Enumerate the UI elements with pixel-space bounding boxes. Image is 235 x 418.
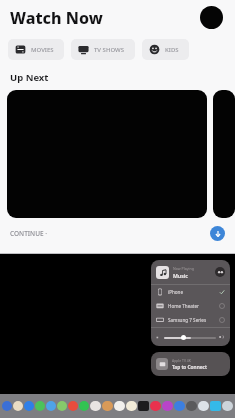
button[interactable]: Dock app 8 xyxy=(79,401,89,411)
staticText: iPhone xyxy=(168,289,184,295)
staticText: Tap to Connect xyxy=(172,364,207,371)
staticText: Up Next xyxy=(10,71,49,84)
button[interactable]: Volume xyxy=(151,328,230,346)
button[interactable]: Dock app 20 xyxy=(222,401,233,411)
staticText: Music xyxy=(173,272,188,279)
button[interactable]: Dock app 19 xyxy=(210,401,221,411)
staticText: Samsung 7 Series xyxy=(168,317,207,323)
button[interactable]: iPhone xyxy=(151,285,230,299)
button[interactable]: Dock app 12 xyxy=(126,401,137,411)
button[interactable]: Dock app 14 xyxy=(150,401,161,411)
button[interactable]: KIDS xyxy=(142,39,189,60)
staticText: Apple TV 4K xyxy=(172,358,191,363)
button[interactable]: Home Theater xyxy=(151,299,230,313)
staticText: CONTINUE · xyxy=(10,229,48,238)
button[interactable]: Dock app 18 xyxy=(198,401,209,411)
button[interactable]: Dock app 9 xyxy=(90,401,101,411)
staticText: Home Theater xyxy=(168,303,199,309)
button[interactable]: Apple TV 4K xyxy=(151,352,230,376)
button[interactable]: Dock app 6 xyxy=(57,401,67,411)
button[interactable]: Dock app 3 xyxy=(24,401,34,411)
button[interactable]: Dock app 1 xyxy=(2,401,12,411)
staticText: Now Playing xyxy=(173,266,194,271)
button[interactable]: Dock app 13 xyxy=(138,401,149,411)
button[interactable]: Dock app 10 xyxy=(102,401,113,411)
button[interactable]: Next title xyxy=(213,90,235,218)
staticText: MOVIES xyxy=(31,46,54,54)
button[interactable]: Dock app 5 xyxy=(46,401,56,411)
staticText: TV SHOWS xyxy=(94,46,125,54)
button[interactable]: MOVIES xyxy=(8,39,64,60)
button[interactable]: Dock app 2 xyxy=(13,401,23,411)
staticText: Watch Now xyxy=(10,7,103,29)
button[interactable]: Dock app 17 xyxy=(186,401,197,411)
button[interactable]: Samsung 7 Series xyxy=(151,313,230,327)
button[interactable]: Dock app 15 xyxy=(162,401,173,411)
button[interactable]: Dock app 16 xyxy=(174,401,185,411)
button[interactable]: Up Next featured title xyxy=(7,90,207,218)
staticText: KIDS xyxy=(165,46,179,54)
button[interactable]: Dock app 7 xyxy=(68,401,78,411)
button[interactable]: Dock app 4 xyxy=(35,401,45,411)
button[interactable]: Dock app 11 xyxy=(114,401,125,411)
button[interactable]: TV SHOWS xyxy=(71,39,135,60)
button[interactable]: Now Playing xyxy=(151,260,230,284)
button[interactable]: Download xyxy=(210,226,225,241)
button[interactable]: Account xyxy=(200,6,223,29)
button[interactable]: AirPods xyxy=(215,267,225,277)
